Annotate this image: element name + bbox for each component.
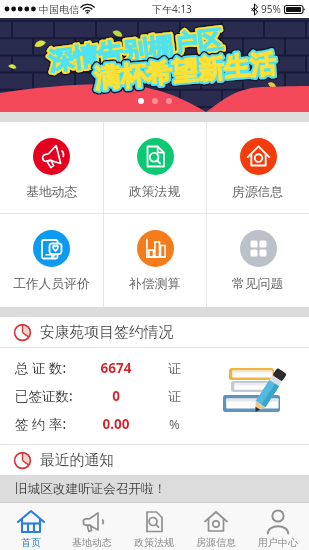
- staticText: 房源信息: [232, 184, 284, 200]
- staticText: 总 证 数:: [15, 359, 67, 377]
- staticText: 安康苑项目签约情况: [40, 323, 174, 342]
- staticText: 中国电信: [39, 3, 79, 16]
- staticText: 基地动态: [26, 184, 78, 200]
- staticText: 深情告别棚户区: [47, 24, 224, 77]
- staticText: 最近的通知: [40, 451, 114, 470]
- staticText: 房源信息: [196, 536, 236, 549]
- staticText: 补偿测算: [129, 276, 181, 292]
- staticText: 95%: [261, 2, 281, 16]
- button[interactable]: 房源信息: [185, 503, 247, 550]
- staticText: 证: [160, 388, 189, 404]
- button[interactable]: 首页: [0, 503, 61, 550]
- button[interactable]: 基地动态: [61, 503, 123, 550]
- button[interactable]: 基地动态: [0, 122, 103, 213]
- staticText: 常见问题: [232, 276, 284, 292]
- staticText: 0.00: [86, 415, 146, 433]
- button[interactable]: 常见问题: [207, 214, 309, 307]
- staticText: %: [160, 415, 189, 433]
- staticText: 0: [86, 387, 146, 405]
- button[interactable]: 政策法规: [104, 122, 206, 213]
- staticText: 证: [160, 360, 189, 376]
- staticText: 满杯希望新生活: [93, 47, 277, 95]
- staticText: 深情告别棚户区: [47, 24, 224, 77]
- staticText: 首页: [21, 536, 41, 549]
- staticText: 基地动态: [72, 536, 112, 549]
- staticText: 下午4:13: [152, 2, 192, 16]
- staticText: 政策法规: [134, 536, 174, 549]
- button[interactable]: 用户中心: [247, 503, 309, 550]
- staticText: 满杯希望新生活: [93, 47, 277, 95]
- button[interactable]: 政策法规: [123, 503, 185, 550]
- staticText: 政策法规: [129, 184, 181, 200]
- button[interactable]: 房源信息: [207, 122, 309, 213]
- button[interactable]: 工作人员评价: [0, 214, 103, 307]
- staticText: 用户中心: [258, 536, 298, 549]
- staticText: 深情告别棚户区: [47, 24, 224, 77]
- staticText: 工作人员评价: [13, 276, 90, 292]
- button[interactable]: 补偿测算: [104, 214, 206, 307]
- button[interactable]: 旧城区改建听证会召开啦！: [0, 475, 309, 502]
- staticText: 满杯希望新生活: [93, 47, 277, 95]
- staticText: 6674: [86, 359, 146, 377]
- staticText: 已签证数:: [15, 387, 73, 405]
- staticText: 旧城区改建听证会召开啦！: [15, 481, 167, 497]
- staticText: 签 约 率:: [15, 415, 67, 433]
